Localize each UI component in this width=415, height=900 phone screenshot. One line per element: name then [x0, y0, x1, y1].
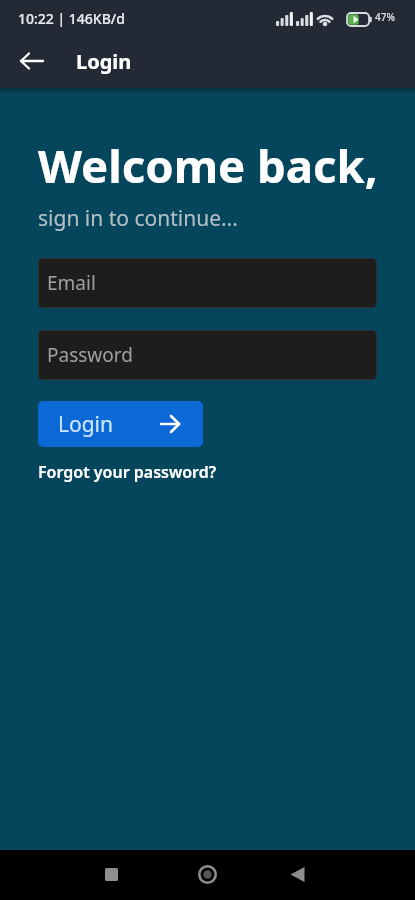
button[interactable] [139, 850, 277, 900]
staticText: sign in to continue... [38, 204, 238, 233]
button[interactable] [277, 850, 415, 900]
staticText: Welcome back, [38, 134, 377, 196]
staticText: 47% [375, 10, 395, 24]
button[interactable]: Password [38, 330, 377, 380]
button[interactable] [9, 38, 55, 84]
button[interactable]: Login [38, 401, 203, 447]
button[interactable]: Email [38, 258, 377, 308]
staticText: Login [76, 48, 132, 75]
button[interactable] [0, 850, 139, 900]
staticText: Login [58, 410, 114, 439]
staticText: Forgot your password? [38, 461, 217, 483]
staticText: Email [47, 270, 96, 296]
staticText: 10:22 | 146KB/d [18, 9, 125, 28]
button[interactable]: Forgot your password? [38, 461, 217, 483]
staticText: Password [47, 342, 133, 368]
